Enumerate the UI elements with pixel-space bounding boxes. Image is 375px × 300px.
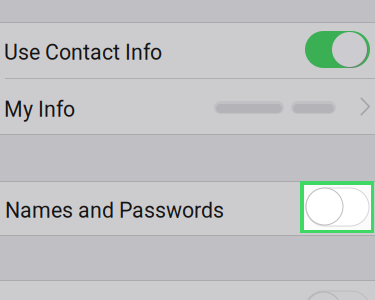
staticText: My Info xyxy=(4,97,75,122)
button[interactable]: Use Contact Info xyxy=(0,22,375,78)
staticText: Names and Passwords xyxy=(5,198,224,223)
button[interactable]: Names and Passwords xyxy=(300,181,374,233)
button[interactable]: Names and Passwords xyxy=(0,182,298,235)
staticText: Use Contact Info xyxy=(4,40,162,65)
button[interactable]: My Info xyxy=(0,79,375,135)
